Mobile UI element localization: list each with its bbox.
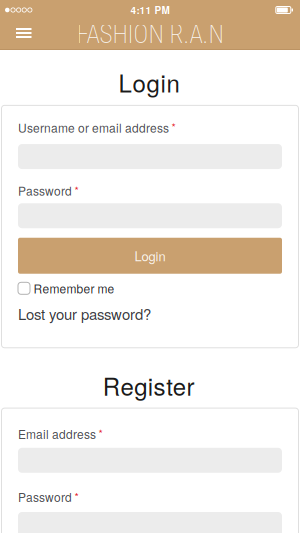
- staticText: *: [171, 119, 175, 135]
- staticText: Email address: [18, 425, 96, 442]
- staticText: Login: [134, 246, 165, 265]
- button[interactable]: Login: [18, 238, 282, 274]
- staticText: FASHION R.A.N: [76, 20, 223, 49]
- staticText: *: [74, 182, 78, 198]
- staticText: Lost your password?: [18, 303, 151, 324]
- staticText: Password: [18, 182, 72, 199]
- staticText: Remember me: [33, 280, 114, 297]
- staticText: Password: [18, 488, 72, 505]
- button[interactable]: Menu: [0, 20, 41, 48]
- staticText: *: [98, 425, 102, 441]
- staticText: Login: [118, 65, 179, 99]
- staticText: 4:11 PM: [130, 3, 169, 17]
- staticText: Register: [103, 368, 197, 403]
- button[interactable]: Lost your password?: [18, 303, 151, 324]
- staticText: *: [74, 488, 78, 504]
- staticText: Username or email address: [18, 119, 169, 136]
- button[interactable]: Remember me: [18, 280, 114, 297]
